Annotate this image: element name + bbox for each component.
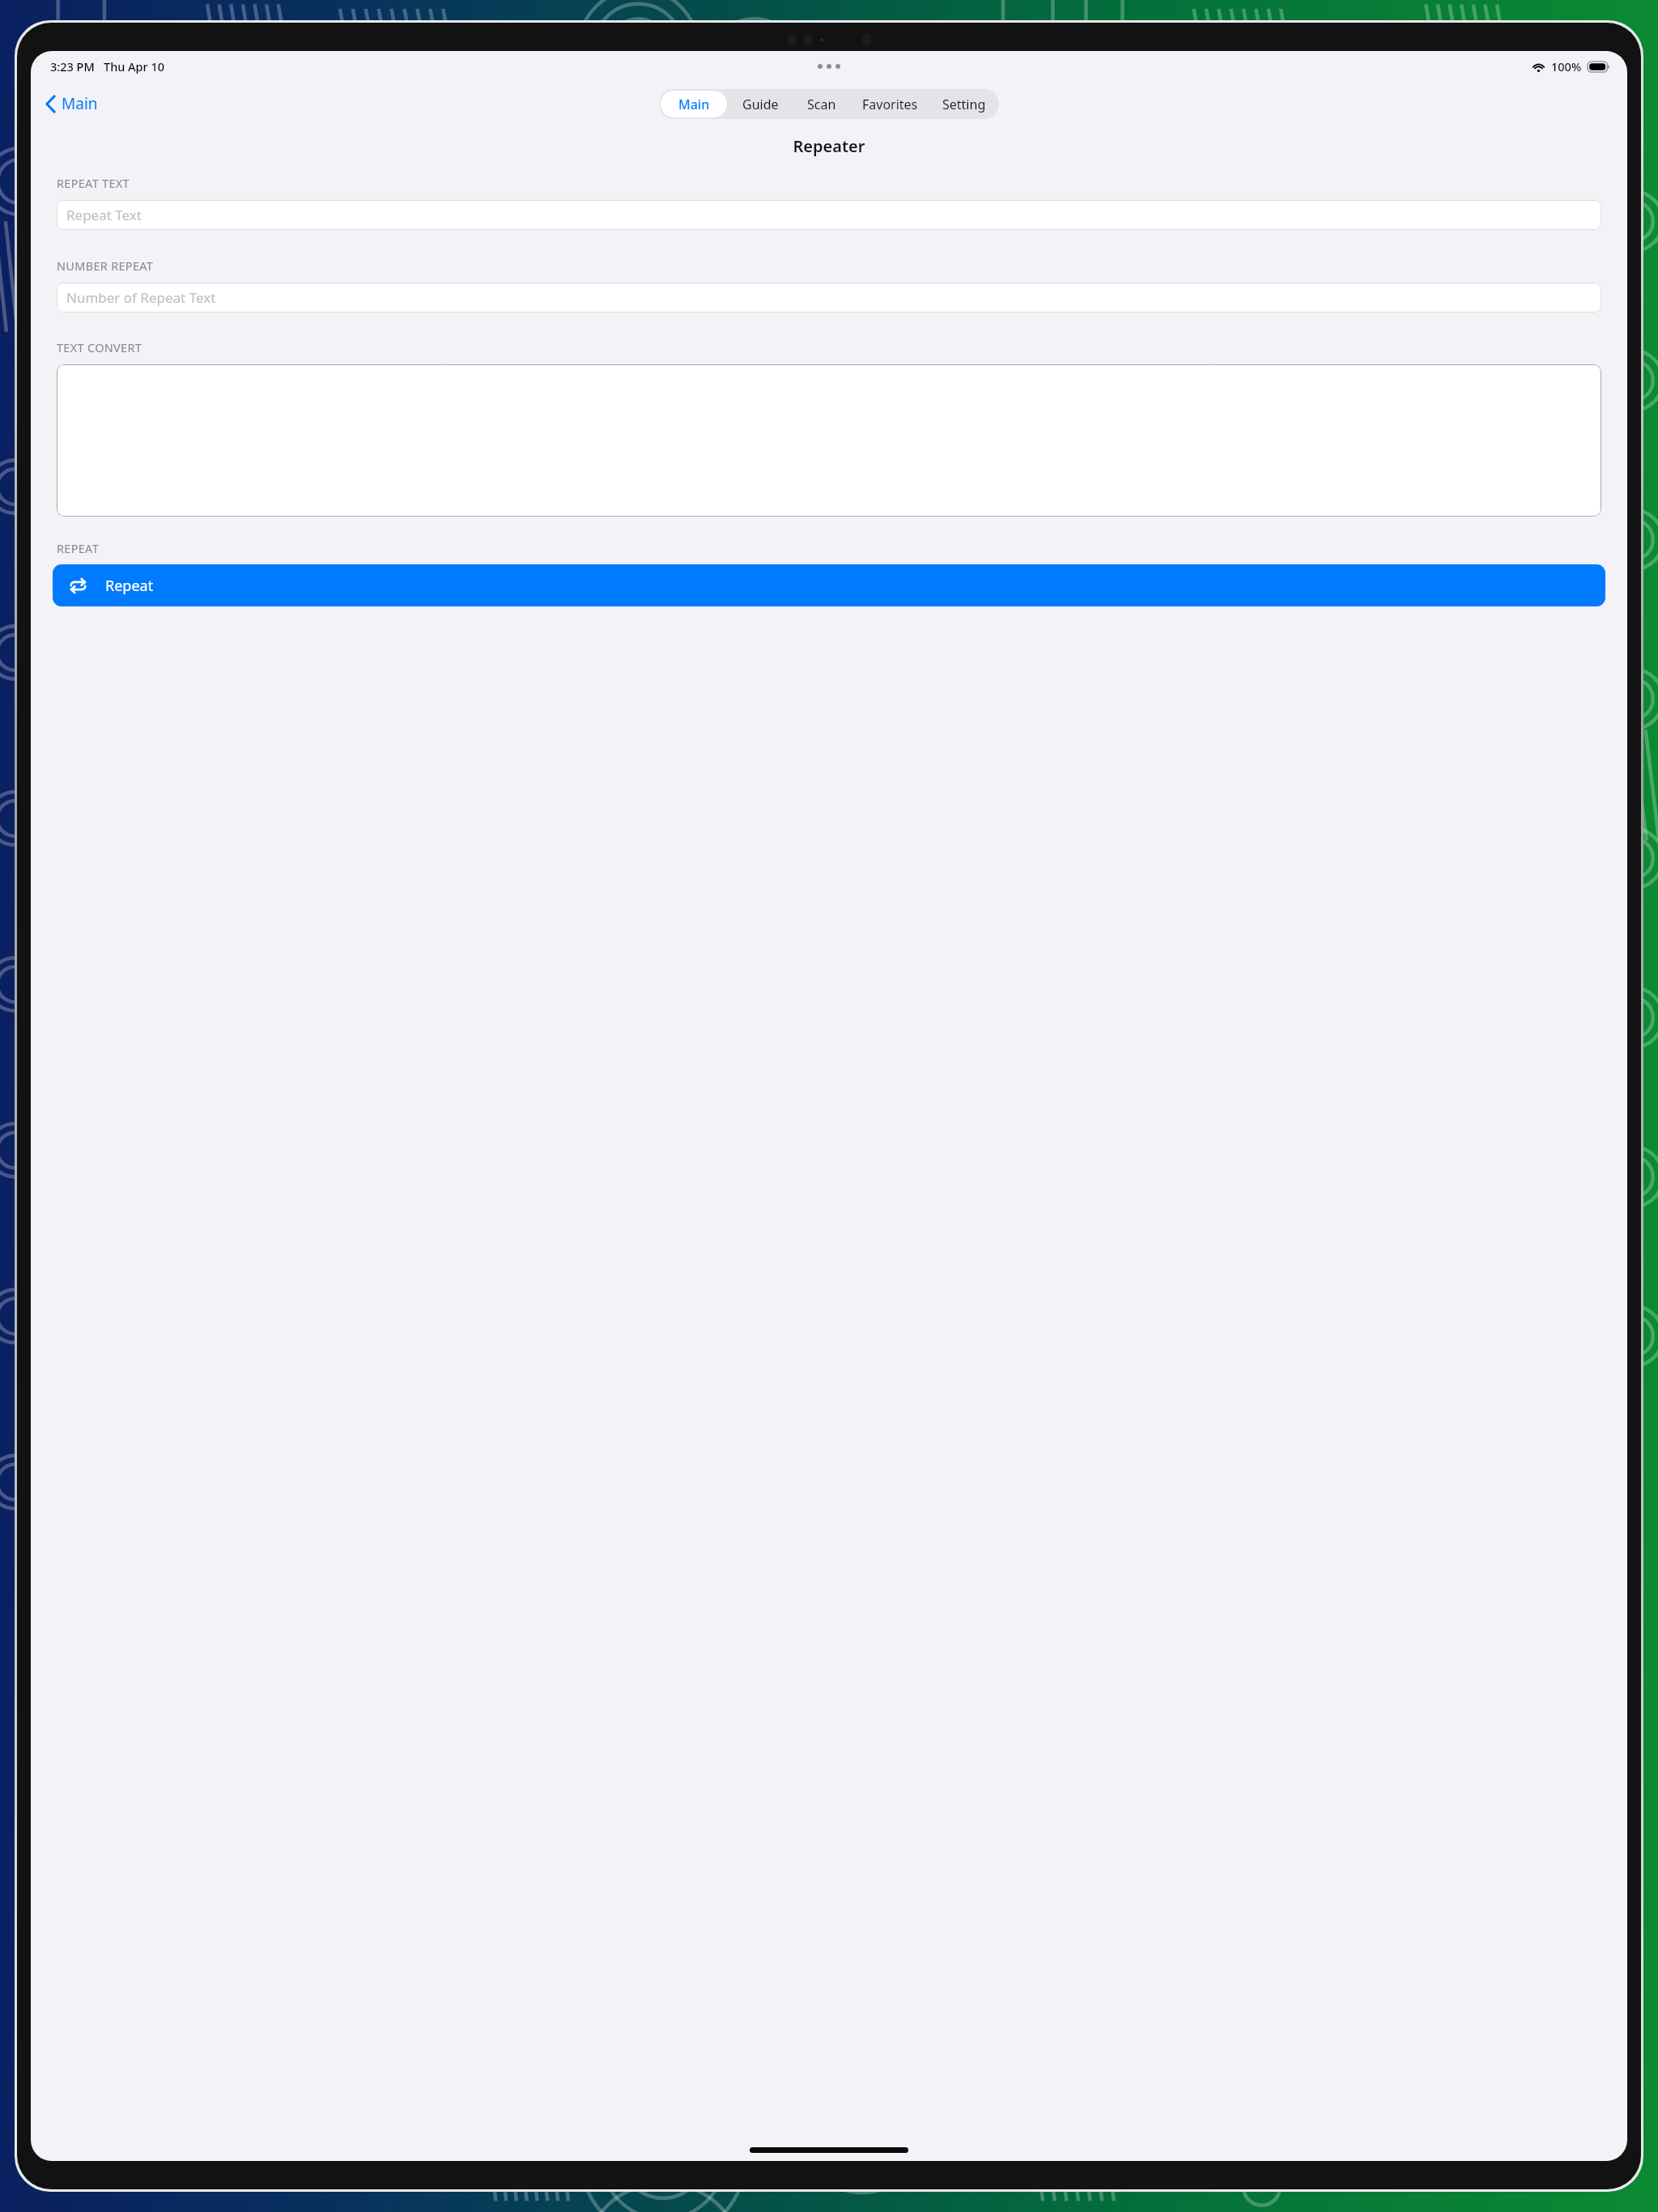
staticText: Main	[678, 96, 710, 113]
button[interactable]: Scan	[793, 91, 849, 117]
button[interactable]	[57, 364, 1601, 517]
staticText: NUMBER REPEAT	[57, 257, 154, 274]
staticText: Favorites	[862, 96, 918, 113]
staticText: REPEAT TEXT	[57, 175, 130, 191]
staticText: 3:23 PM	[50, 58, 95, 74]
staticText: Thu Apr 10	[104, 58, 165, 74]
other: Repeat	[69, 576, 87, 595]
button[interactable]: Main	[661, 91, 727, 117]
staticText: Repeat	[105, 576, 154, 596]
staticText: Scan	[807, 96, 836, 113]
button[interactable]: Guide	[727, 91, 793, 117]
button[interactable]: Main	[42, 90, 101, 117]
staticText: Guide	[742, 96, 779, 113]
staticText: 100%	[1551, 58, 1582, 74]
staticText: Repeat Text	[66, 206, 142, 224]
staticText: TEXT CONVERT	[57, 339, 142, 355]
button[interactable]: Setting	[931, 91, 997, 117]
staticText: Number of Repeat Text	[66, 288, 216, 307]
staticText: Main	[62, 93, 98, 114]
button[interactable]: Number of Repeat Text	[57, 283, 1601, 313]
staticText: Setting	[942, 96, 986, 113]
button[interactable]: Repeat Text	[57, 200, 1601, 230]
staticText: REPEAT	[57, 540, 100, 556]
staticText: Repeater	[31, 135, 1627, 157]
button[interactable]: Repeat	[53, 564, 1605, 606]
button[interactable]: Favorites	[849, 91, 931, 117]
